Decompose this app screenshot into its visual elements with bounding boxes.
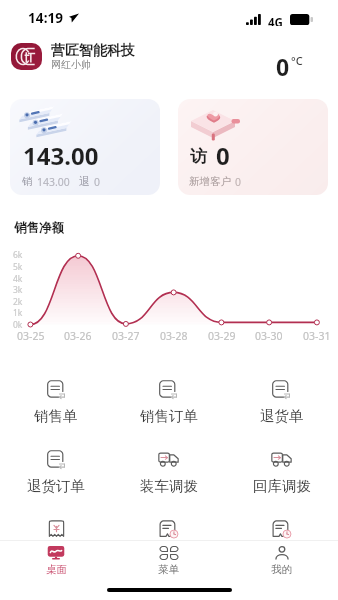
staticText: °C (291, 53, 303, 68)
staticText: 营匠智能科技 (51, 42, 135, 60)
staticText: 5k (13, 261, 23, 273)
staticText: 1k (13, 307, 23, 319)
button[interactable]: 退货单 (225, 369, 338, 439)
staticText: 装车调拨 (140, 477, 198, 495)
staticText: 销售订单 (140, 407, 198, 425)
staticText: 03-26 (64, 329, 92, 343)
staticText: 3k (13, 284, 23, 296)
staticText: 03-30 (255, 329, 283, 343)
staticText: 0 (276, 51, 290, 82)
staticText: 4k (13, 273, 23, 285)
staticText: 143.00 (37, 175, 70, 189)
staticText: 新增客户 (189, 175, 231, 188)
staticText: 03-27 (112, 329, 140, 343)
staticText: 销售净额 (14, 220, 64, 236)
staticText: 2k (13, 296, 23, 308)
staticText: 14:19 (28, 9, 64, 27)
button[interactable]: 菜单 (112, 541, 225, 576)
staticText: 回库调拨 (253, 477, 311, 495)
staticText: 销售单 (34, 407, 78, 425)
staticText: 03-29 (208, 329, 236, 343)
staticText: 0 (216, 139, 230, 172)
button[interactable]: 销售单 (0, 369, 112, 439)
staticText: 退 (79, 175, 90, 188)
staticText: 03-25 (17, 329, 45, 343)
staticText: 桌面 (46, 563, 67, 576)
staticText: 03-31 (303, 329, 331, 343)
staticText: 退货订单 (27, 477, 85, 495)
staticText: 销 (22, 175, 33, 188)
button[interactable]: 对账单 (112, 509, 225, 579)
staticText: 0k (13, 319, 23, 331)
staticText: 4G (268, 15, 283, 26)
staticText: 收款单 (34, 547, 78, 565)
button[interactable]: 访 (178, 99, 328, 195)
staticText: 03-28 (160, 329, 188, 343)
button[interactable]: 销售订单 (112, 369, 225, 439)
button[interactable]: 回库调拨 (225, 439, 338, 509)
staticText: 访 (190, 146, 207, 167)
button[interactable]: 退货订单 (0, 439, 112, 509)
staticText: 对账单 (147, 547, 191, 565)
staticText: 143.00 (23, 139, 99, 172)
button[interactable]: 143.00 (10, 99, 160, 195)
staticText: 6k (13, 249, 23, 261)
button[interactable]: 桌面 (0, 541, 112, 576)
button[interactable]: 收款单 (0, 509, 112, 579)
staticText: 我的 (271, 563, 292, 576)
staticText: 0 (94, 175, 101, 189)
button[interactable]: 盘点单 (225, 509, 338, 579)
staticText: 网红小帅 (51, 58, 91, 71)
staticText: 菜单 (158, 563, 179, 576)
staticText: 退货单 (260, 407, 304, 425)
staticText: 盘点单 (260, 547, 304, 565)
staticText: 0 (235, 175, 242, 189)
button[interactable]: 装车调拨 (112, 439, 225, 509)
button[interactable]: 我的 (225, 541, 338, 576)
button[interactable]: 营匠智能科技 (11, 41, 135, 72)
